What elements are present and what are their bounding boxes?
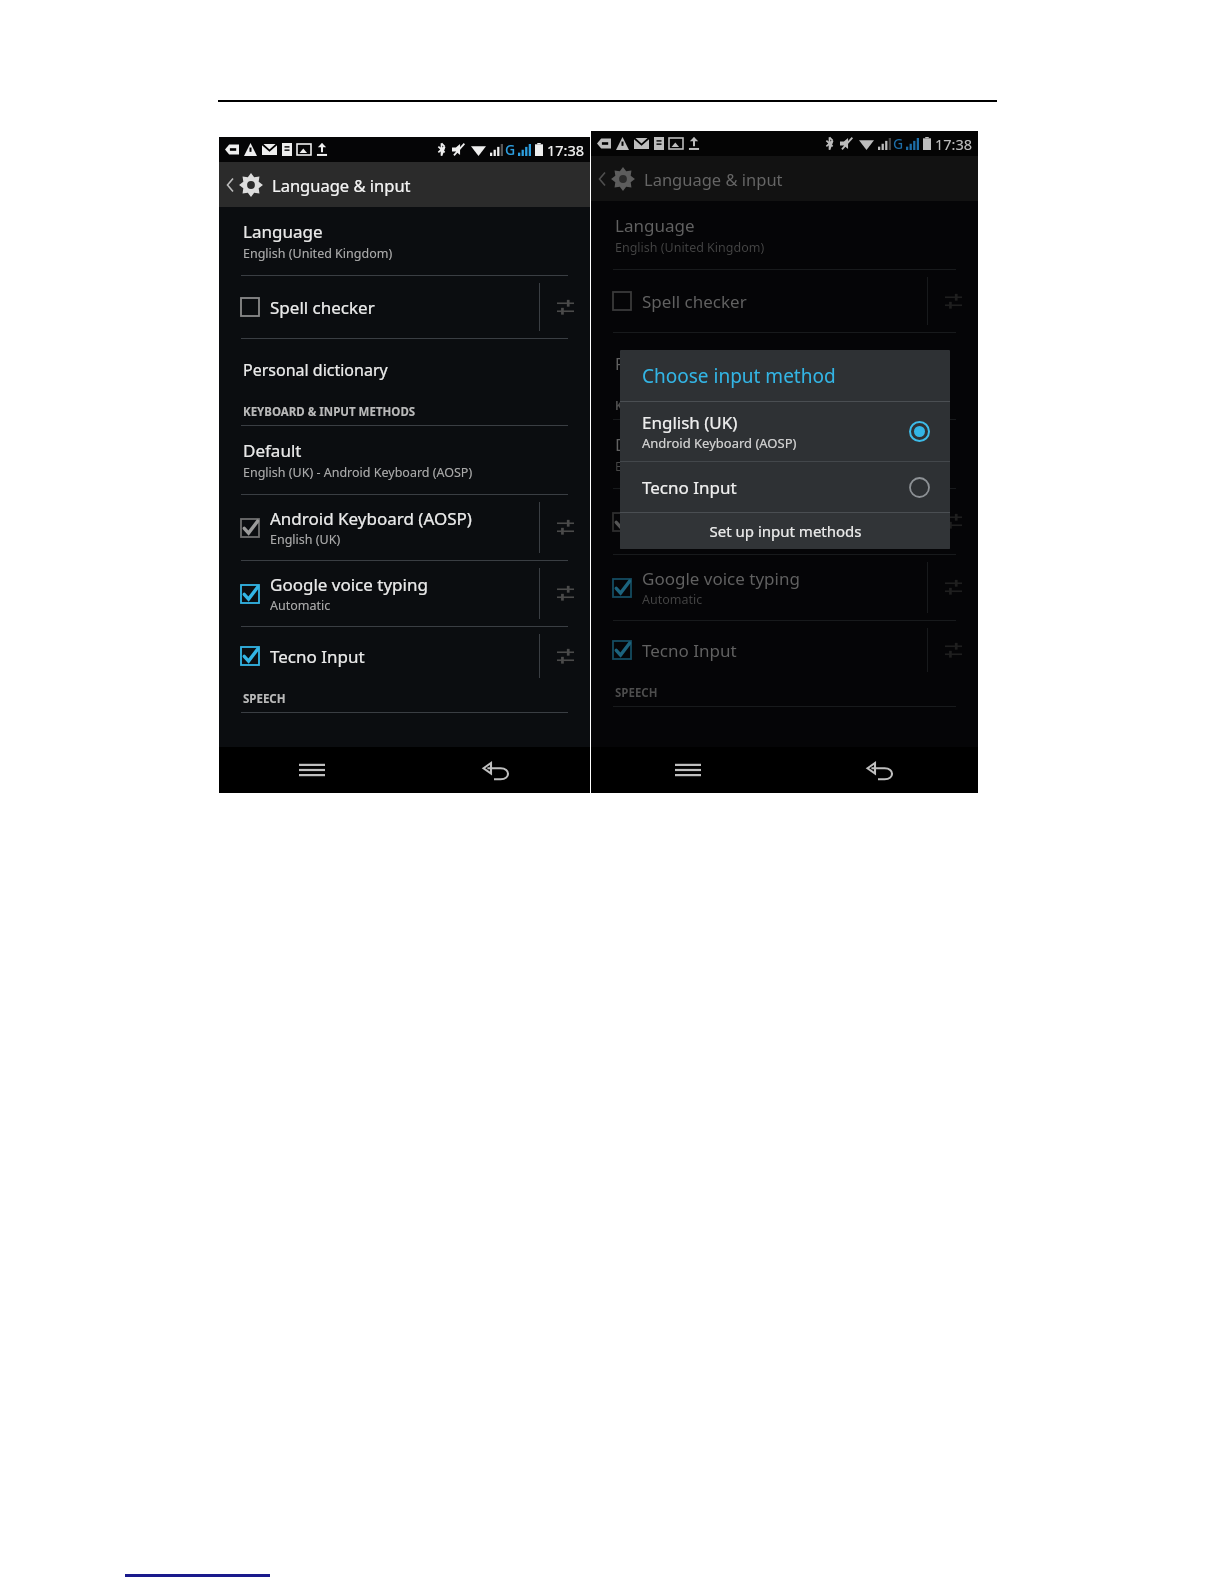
button[interactable]: Set up input methods <box>620 513 950 549</box>
staticText: Spell checker <box>642 290 747 313</box>
staticText: Default <box>243 439 302 462</box>
button[interactable]: Personal dictionary <box>219 348 590 392</box>
staticText: Default <box>615 433 674 456</box>
staticText: English (United Kingdom) <box>615 239 765 256</box>
button[interactable]: English (UK) <box>620 402 950 461</box>
button[interactable]: Settings <box>928 489 978 554</box>
button[interactable]: Settings <box>540 627 590 685</box>
button[interactable]: Settings <box>540 561 590 626</box>
staticText: Automatic <box>642 591 703 608</box>
staticText: Language <box>243 220 323 243</box>
staticText: Language & input <box>272 174 411 196</box>
staticText: SPEECH <box>615 685 658 701</box>
staticText: Language <box>615 214 695 237</box>
button[interactable]: Default <box>219 426 590 494</box>
staticText: Google voice typing <box>642 567 800 590</box>
staticText: Automatic <box>270 597 331 614</box>
staticText: English (UK) - Android Keyboard (AOSP) <box>615 458 845 475</box>
staticText: G <box>893 134 904 153</box>
button[interactable]: Google voice typing <box>591 555 927 620</box>
staticText: English (UK) <box>270 531 341 548</box>
button[interactable]: Menu <box>591 747 784 793</box>
button[interactable]: Android Keyboard (AOSP) <box>219 495 539 560</box>
staticText: Spell checker <box>270 296 375 319</box>
button[interactable]: Google voice typing <box>219 561 539 626</box>
staticText: KEYBOARD & INPUT METHODS <box>615 398 788 414</box>
button[interactable]: Tecno Input <box>219 627 539 685</box>
staticText: English (UK) <box>642 525 713 542</box>
button[interactable]: Language & input <box>219 162 590 207</box>
button[interactable]: Personal dictionary <box>591 342 978 386</box>
staticText: Tecno Input <box>642 639 737 662</box>
staticText: English (UK) <box>642 411 738 434</box>
staticText: Android Keyboard (AOSP) <box>642 434 797 452</box>
button[interactable]: Spell checker <box>219 276 539 338</box>
button[interactable]: Menu <box>219 747 404 793</box>
button[interactable]: Default <box>591 420 978 488</box>
staticText: Android Keyboard (AOSP) <box>270 507 472 530</box>
staticText: Personal dictionary <box>243 359 388 381</box>
button[interactable]: Back <box>784 747 978 793</box>
button[interactable]: Android Keyboard (AOSP) <box>591 489 927 554</box>
staticText: Personal dictionary <box>615 353 760 375</box>
button[interactable]: Language <box>219 207 590 275</box>
staticText: Set up input methods <box>709 521 862 541</box>
button[interactable]: Language <box>591 201 978 269</box>
staticText: Tecno Input <box>270 645 365 668</box>
button[interactable]: Settings <box>540 276 590 338</box>
button[interactable]: Tecno Input <box>620 462 950 512</box>
staticText: SPEECH <box>243 691 286 707</box>
button[interactable]: Tecno Input <box>591 621 927 679</box>
staticText: Language & input <box>644 168 783 190</box>
button[interactable]: Spell checker <box>591 270 927 332</box>
staticText: Google voice typing <box>270 573 428 596</box>
button[interactable]: Settings <box>928 621 978 679</box>
staticText: 17:38 <box>547 140 585 160</box>
button[interactable]: Settings <box>928 270 978 332</box>
button[interactable]: Settings <box>928 555 978 620</box>
button[interactable]: Language & input <box>591 156 978 201</box>
staticText: 17:38 <box>935 134 973 154</box>
staticText: Choose input method <box>642 363 836 389</box>
staticText: English (UK) - Android Keyboard (AOSP) <box>243 464 473 481</box>
staticText: G <box>505 140 516 159</box>
staticText: Tecno Input <box>642 476 909 499</box>
staticText: English (United Kingdom) <box>243 245 393 262</box>
staticText: Android Keyboard (AOSP) <box>642 501 844 524</box>
button[interactable]: Settings <box>540 495 590 560</box>
button[interactable]: Back <box>404 747 590 793</box>
staticText: KEYBOARD & INPUT METHODS <box>243 404 416 420</box>
